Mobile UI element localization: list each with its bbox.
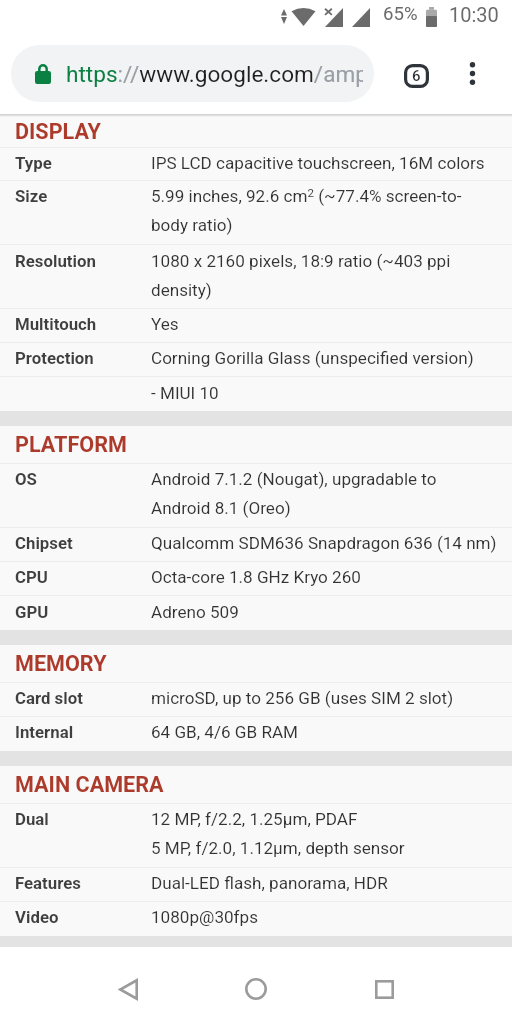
staticText: 5.99 inches, 92.6 cm2 (~77.4% screen-to-… xyxy=(151,186,462,235)
staticText: Features xyxy=(15,873,81,893)
staticText: Android 7.1.2 (Nougat), upgradable to An… xyxy=(151,469,437,518)
button[interactable]: Tabs xyxy=(396,56,436,96)
staticText: 1080p@30fps xyxy=(151,907,258,927)
staticText: - MIUI 10 xyxy=(151,383,219,403)
staticText: Corning Gorilla Glass (unspecified versi… xyxy=(151,348,474,368)
staticText: Dual-LED flash, panorama, HDR xyxy=(151,873,388,893)
staticText: Type xyxy=(15,153,52,173)
staticText: Video xyxy=(15,907,59,927)
button[interactable]: Recents xyxy=(360,965,408,1013)
staticText: MEMORY xyxy=(15,651,107,676)
button[interactable]: Back xyxy=(104,965,152,1013)
staticText: Octa-core 1.8 GHz Kryo 260 xyxy=(151,567,361,587)
staticText: microSD, up to 256 GB (uses SIM 2 slot) xyxy=(151,688,454,708)
staticText: CPU xyxy=(15,567,48,587)
staticText: IPS LCD capacitive touchscreen, 16M colo… xyxy=(151,153,485,173)
staticText: Size xyxy=(15,186,48,206)
staticText: Multitouch xyxy=(15,314,97,334)
staticText: OS xyxy=(15,469,37,489)
staticText: Yes xyxy=(151,314,179,334)
staticText: Adreno 509 xyxy=(151,602,239,622)
staticText: PLATFORM xyxy=(15,432,127,457)
staticText: 64 GB, 4/6 GB RAM xyxy=(151,722,298,742)
staticText: Protection xyxy=(15,348,94,368)
staticText: Dual xyxy=(15,809,49,829)
staticText: DISPLAY xyxy=(15,119,101,144)
button[interactable]: More options xyxy=(452,53,492,93)
staticText: GPU xyxy=(15,602,49,622)
staticText: 65% xyxy=(383,3,418,25)
button[interactable]: https://www.google.com/amp xyxy=(11,45,374,102)
staticText: Qualcomm SDM636 Snapdragon 636 (14 nm) xyxy=(151,533,497,553)
staticText: 12 MP, f/2.2, 1.25µm, PDAF 5 MP, f/2.0, … xyxy=(151,809,405,858)
staticText: Resolution xyxy=(15,251,96,271)
staticText: Internal xyxy=(15,722,74,742)
staticText: 6 xyxy=(412,67,421,85)
staticText: MAIN CAMERA xyxy=(15,772,164,797)
staticText: Chipset xyxy=(15,533,73,553)
staticText: Card slot xyxy=(15,688,83,708)
staticText: 10:30 xyxy=(449,3,499,26)
staticText: https://www.google.com/amp xyxy=(66,61,363,87)
button[interactable]: Home xyxy=(232,965,280,1013)
staticText: 1080 x 2160 pixels, 18:9 ratio (~403 ppi… xyxy=(151,251,451,300)
